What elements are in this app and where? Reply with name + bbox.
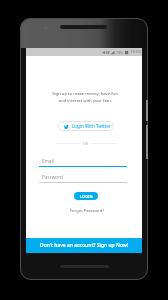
button[interactable]: Password xyxy=(39,174,127,183)
staticText: OR xyxy=(83,141,89,146)
staticText: Don't have an account? Sign up Now! xyxy=(40,242,129,249)
button[interactable]: Login With Twitter xyxy=(58,121,114,131)
staticText: Password xyxy=(42,174,63,180)
button[interactable]: Email xyxy=(39,158,127,167)
staticText: Sign up to make money, have fun and inte… xyxy=(27,91,143,103)
button[interactable]: Don't have an account? Sign up Now! xyxy=(26,238,142,253)
staticText: Login With Twitter xyxy=(72,123,111,129)
staticText: 15:03 xyxy=(130,49,141,55)
staticText: Email xyxy=(42,158,54,164)
button[interactable]: LOGIN xyxy=(74,192,98,200)
button[interactable]: Forgot Password? xyxy=(29,208,145,214)
staticText: 78% xyxy=(116,50,124,55)
staticText: LOGIN xyxy=(80,194,93,199)
